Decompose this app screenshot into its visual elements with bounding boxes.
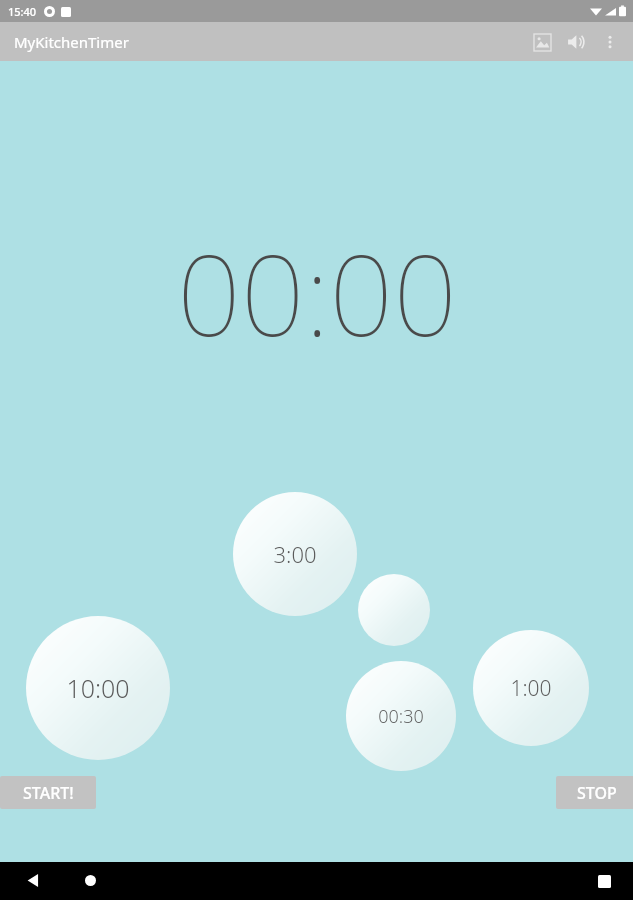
button[interactable]: STOP (556, 776, 633, 809)
button[interactable]: 00:30 (346, 661, 456, 771)
staticText: MyKitchenTimer (14, 32, 129, 52)
button[interactable]: 1:00 (473, 630, 589, 746)
button[interactable]: START! (0, 776, 96, 809)
button[interactable]: More options (593, 25, 627, 59)
button[interactable]: Timer bubble (358, 574, 430, 646)
staticText: 10:00 (66, 671, 130, 705)
button[interactable]: Back (15, 862, 51, 898)
staticText: START! (23, 782, 74, 804)
staticText: 3:00 (273, 539, 317, 569)
button[interactable]: 10:00 (26, 616, 170, 760)
staticText: 15:40 (8, 4, 37, 19)
button[interactable]: Home (72, 862, 108, 898)
button[interactable]: Sound (559, 25, 593, 59)
staticText: 00:00 (177, 216, 457, 369)
staticText: 00:30 (378, 704, 424, 729)
button[interactable]: Recent apps (586, 863, 622, 899)
button[interactable]: Change background image (525, 25, 559, 59)
staticText: 1:00 (510, 674, 552, 703)
button[interactable]: 3:00 (233, 492, 357, 616)
staticText: STOP (577, 782, 617, 804)
